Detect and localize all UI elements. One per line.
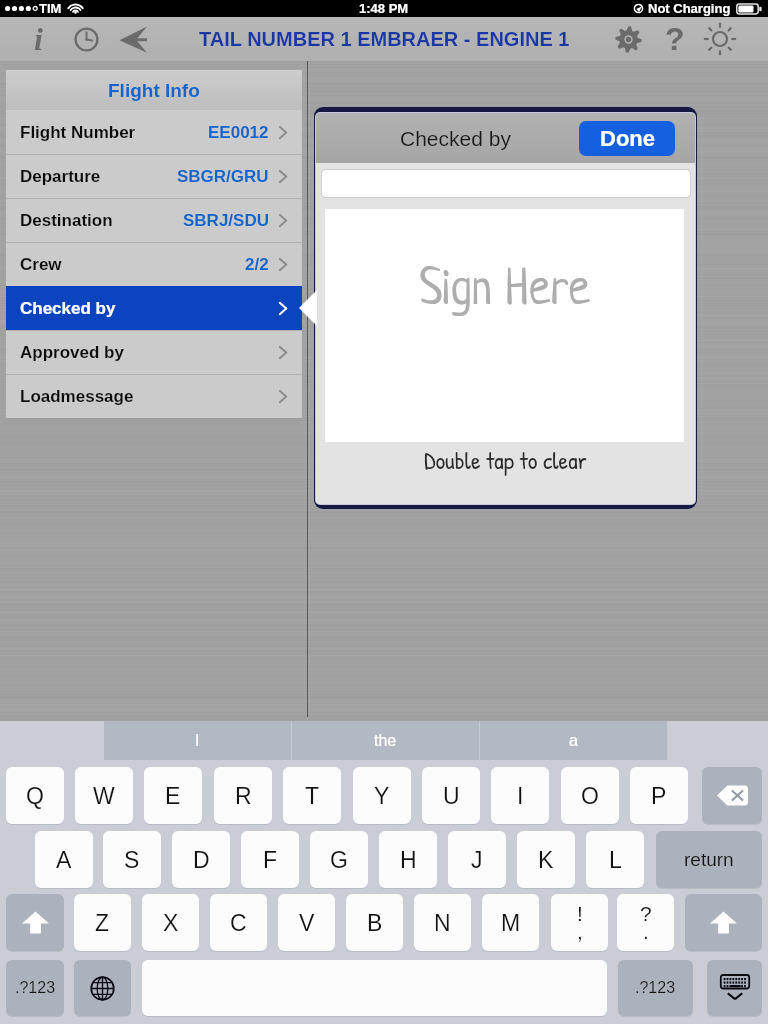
- button[interactable]: History: [68, 17, 104, 61]
- staticText: EE0012: [208, 123, 269, 142]
- button[interactable]: X: [142, 894, 199, 951]
- staticText: V: [299, 910, 315, 936]
- staticText: O: [581, 783, 599, 809]
- button[interactable]: K: [517, 831, 575, 888]
- staticText: .: [643, 920, 649, 943]
- button[interactable]: S: [103, 831, 161, 888]
- staticText: SBGR/GRU: [177, 167, 269, 186]
- button[interactable]: Q: [6, 767, 64, 824]
- button[interactable]: [321, 169, 691, 198]
- button[interactable]: U: [422, 767, 480, 824]
- button[interactable]: Loadmessage: [6, 374, 302, 418]
- button[interactable]: ?: [617, 894, 674, 951]
- button[interactable]: W: [75, 767, 133, 824]
- staticText: Flight Info: [108, 80, 200, 101]
- button[interactable]: O: [561, 767, 619, 824]
- staticText: ?: [640, 902, 652, 925]
- staticText: .?123: [15, 979, 56, 997]
- button[interactable]: Hide keyboard: [707, 960, 762, 1016]
- button[interactable]: H: [379, 831, 437, 888]
- staticText: .?123: [635, 979, 676, 997]
- button[interactable]: V: [278, 894, 335, 951]
- staticText: S: [124, 847, 140, 873]
- staticText: T: [305, 783, 320, 809]
- staticText: Departure: [20, 167, 101, 186]
- button[interactable]: Settings: [609, 17, 647, 61]
- staticText: F: [263, 847, 278, 873]
- button[interactable]: Sign Here: [325, 209, 684, 442]
- button[interactable]: Destination: [6, 198, 302, 242]
- button[interactable]: L: [586, 831, 644, 888]
- staticText: Double tap to clear: [424, 444, 587, 476]
- button[interactable]: Checked by: [6, 286, 302, 330]
- button[interactable]: .?123: [6, 960, 64, 1016]
- staticText: Not Charging: [648, 1, 731, 16]
- button[interactable]: Y: [353, 767, 411, 824]
- staticText: R: [235, 783, 252, 809]
- staticText: Sign Here: [420, 266, 590, 318]
- button[interactable]: !: [551, 894, 608, 951]
- button[interactable]: Info: [20, 17, 56, 61]
- staticText: Y: [374, 783, 390, 809]
- button[interactable]: Done: [579, 121, 675, 156]
- button[interactable]: I: [104, 721, 291, 760]
- staticText: SBRJ/SDU: [183, 211, 269, 230]
- button[interactable]: Flight Number: [6, 110, 302, 154]
- button[interactable]: M: [482, 894, 539, 951]
- staticText: i: [34, 21, 43, 56]
- button[interactable]: Back: [113, 17, 153, 61]
- staticText: U: [443, 783, 460, 809]
- button[interactable]: Departure: [6, 154, 302, 198]
- button[interactable]: R: [214, 767, 272, 824]
- staticText: H: [400, 847, 417, 873]
- button[interactable]: Change keyboard: [74, 960, 131, 1016]
- staticText: Z: [95, 910, 110, 936]
- button[interactable]: D: [172, 831, 230, 888]
- button[interactable]: P: [630, 767, 688, 824]
- staticText: Done: [600, 126, 655, 151]
- staticText: I: [517, 783, 524, 809]
- staticText: Flight Number: [20, 123, 136, 142]
- staticText: return: [684, 849, 734, 870]
- staticText: G: [330, 847, 348, 873]
- button[interactable]: Approved by: [6, 330, 302, 374]
- button[interactable]: F: [241, 831, 299, 888]
- button[interactable]: G: [310, 831, 368, 888]
- button[interactable]: return: [656, 831, 762, 888]
- button[interactable]: T: [283, 767, 341, 824]
- button[interactable]: Brightness: [701, 17, 739, 61]
- staticText: D: [193, 847, 210, 873]
- staticText: Destination: [20, 211, 113, 230]
- staticText: E: [165, 783, 181, 809]
- button[interactable]: the: [292, 721, 479, 760]
- staticText: the: [374, 732, 397, 750]
- button[interactable]: Crew: [6, 242, 302, 286]
- staticText: ?: [665, 21, 685, 57]
- button[interactable]: Shift: [6, 894, 64, 951]
- button[interactable]: J: [448, 831, 506, 888]
- staticText: B: [367, 910, 383, 936]
- staticText: M: [501, 910, 521, 936]
- button[interactable]: C: [210, 894, 267, 951]
- staticText: P: [651, 783, 667, 809]
- staticText: TAIL NUMBER 1 EMBRAER - ENGINE 1: [199, 28, 570, 50]
- button[interactable]: N: [414, 894, 471, 951]
- button[interactable]: A: [35, 831, 93, 888]
- button[interactable]: I: [491, 767, 549, 824]
- staticText: 1:48 PM: [359, 1, 409, 16]
- staticText: Loadmessage: [20, 387, 134, 406]
- staticText: N: [434, 910, 451, 936]
- button[interactable]: Z: [74, 894, 131, 951]
- staticText: Checked by: [400, 127, 511, 150]
- button[interactable]: Help: [657, 17, 693, 61]
- staticText: W: [93, 783, 115, 809]
- staticText: C: [230, 910, 247, 936]
- button[interactable]: Backspace: [702, 767, 762, 824]
- staticText: Checked by: [20, 299, 116, 318]
- button[interactable]: E: [144, 767, 202, 824]
- button[interactable]: .?123: [618, 960, 693, 1016]
- button[interactable]: Shift: [685, 894, 762, 951]
- button[interactable]: a: [480, 721, 667, 760]
- button[interactable]: B: [346, 894, 403, 951]
